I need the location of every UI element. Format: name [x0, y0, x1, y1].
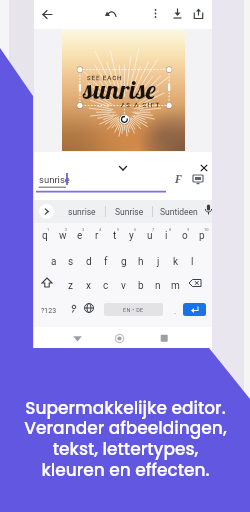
staticText: q: [42, 230, 48, 242]
button[interactable]: Enter: [183, 303, 206, 316]
button[interactable]: Voice input: [205, 203, 212, 221]
button[interactable]: F: [170, 171, 186, 187]
button[interactable]: v: [115, 274, 132, 298]
staticText: EN • DE: [123, 307, 144, 313]
staticText: sunrise: [68, 207, 96, 217]
staticText: F: [175, 172, 182, 186]
button[interactable]: x: [80, 274, 97, 298]
staticText: j: [157, 256, 160, 268]
button[interactable]: Suntideen: [153, 200, 205, 223]
staticText: 5: [117, 227, 120, 232]
button[interactable]: n: [149, 274, 166, 298]
staticText: g: [121, 256, 127, 268]
button[interactable]: d: [80, 250, 97, 274]
button[interactable]: i: [158, 224, 175, 248]
staticText: Supermakkelijke editor. Verander afbeeld…: [24, 396, 227, 482]
staticText: 2: [65, 227, 68, 232]
button[interactable]: .: [166, 299, 184, 323]
staticText: AS A GIFT: [121, 101, 161, 108]
staticText: e: [77, 230, 83, 242]
button[interactable]: u: [141, 224, 158, 248]
button[interactable]: Back: [71, 332, 84, 345]
staticText: h: [138, 256, 144, 268]
staticText: c: [103, 280, 109, 292]
button[interactable]: Download: [165, 1, 190, 26]
button[interactable]: Change language: [80, 299, 98, 323]
button[interactable]: m: [167, 274, 184, 298]
button[interactable]: a: [45, 250, 62, 274]
button[interactable]: l: [184, 250, 201, 274]
staticText: SEE EACH: [87, 74, 123, 81]
button[interactable]: Keyboard: [190, 171, 206, 187]
staticText: p: [199, 230, 205, 242]
button[interactable]: g: [115, 250, 132, 274]
button[interactable]: Share: [186, 1, 211, 26]
button[interactable]: Close: [190, 154, 218, 182]
button[interactable]: EN • DE: [104, 303, 163, 316]
staticText: sunrise: [83, 73, 157, 106]
button[interactable]: f: [97, 250, 114, 274]
button[interactable]: Emoji: [65, 299, 83, 323]
button[interactable]: Undo: [98, 1, 125, 28]
staticText: 3: [82, 227, 85, 232]
button[interactable]: h: [132, 250, 149, 274]
button[interactable]: t: [106, 224, 123, 248]
staticText: 1: [47, 227, 50, 232]
button[interactable]: k: [167, 250, 184, 274]
staticText: v: [121, 280, 126, 292]
staticText: z: [68, 280, 73, 292]
staticText: sunrise: [39, 174, 70, 185]
button[interactable]: c: [97, 274, 114, 298]
button[interactable]: Home: [113, 332, 126, 345]
button[interactable]: Shift: [38, 274, 56, 298]
button[interactable]: b: [132, 274, 149, 298]
staticText: 10: [204, 227, 209, 232]
button[interactable]: Collapse: [109, 154, 137, 182]
button[interactable]: q: [36, 224, 53, 248]
staticText: 6: [134, 227, 137, 232]
staticText: 4: [99, 227, 102, 232]
button[interactable]: Backspace: [186, 274, 204, 298]
staticText: .: [174, 307, 177, 316]
staticText: Suntideen: [160, 207, 198, 217]
button[interactable]: More options: [143, 1, 168, 26]
button[interactable]: sunrise: [59, 200, 105, 223]
button[interactable]: j: [150, 250, 167, 274]
button[interactable]: Sunrise: [106, 200, 152, 223]
button[interactable]: Back: [34, 1, 61, 28]
button[interactable]: p: [193, 224, 210, 248]
button[interactable]: w: [54, 224, 71, 248]
button[interactable]: ?123: [39, 299, 58, 323]
staticText: a: [51, 256, 57, 268]
staticText: 8: [169, 227, 172, 232]
button[interactable]: Expand suggestions: [39, 204, 54, 219]
staticText: 9: [187, 227, 190, 232]
staticText: ?123: [41, 307, 57, 315]
button[interactable]: e: [71, 224, 88, 248]
staticText: Sunrise: [115, 207, 144, 217]
button[interactable]: sunrise: [36, 172, 168, 194]
staticText: s: [68, 256, 74, 268]
staticText: r: [95, 230, 99, 242]
staticText: 7: [152, 227, 155, 232]
staticText: x: [86, 280, 91, 292]
staticText: o: [182, 230, 188, 242]
staticText: f: [104, 256, 108, 268]
staticText: d: [86, 256, 92, 268]
staticText: k: [173, 256, 179, 268]
staticText: i: [165, 230, 168, 242]
button[interactable]: Recent apps: [158, 332, 171, 345]
staticText: b: [138, 280, 144, 292]
staticText: m: [171, 280, 180, 292]
staticText: w: [59, 230, 67, 242]
staticText: l: [191, 256, 194, 268]
button[interactable]: z: [62, 274, 79, 298]
button[interactable]: y: [123, 224, 140, 248]
button[interactable]: s: [62, 250, 79, 274]
staticText: y: [129, 230, 134, 242]
button[interactable]: r: [88, 224, 105, 248]
staticText: t: [113, 230, 117, 242]
button[interactable]: o: [176, 224, 193, 248]
staticText: u: [147, 230, 153, 242]
staticText: n: [155, 280, 161, 292]
